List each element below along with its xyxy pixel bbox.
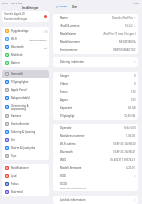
staticText: 8946 0000 0000 0000 000 <box>60 187 87 190</box>
staticText: Apple Pencil <box>11 88 27 92</box>
staticText: 100% <box>133 1 140 4</box>
button[interactable]: Tillgängligt <box>53 112 138 120</box>
staticText: Generellt <box>11 72 23 76</box>
staticText: Bluetooth <box>11 45 24 49</box>
staticText: Allmänt <box>59 5 68 8</box>
button[interactable]: Videor <box>53 80 138 88</box>
staticText: Orientering & anpassning <box>11 104 29 111</box>
button[interactable]: Ljud <box>2 172 49 180</box>
staticText: Flygplansläge <box>11 29 29 33</box>
button[interactable]: ICCID <box>53 180 138 191</box>
button[interactable]: Fokus <box>2 180 49 188</box>
staticText: Ljud <box>11 174 17 178</box>
staticText: 32,65 GB <box>124 114 136 118</box>
button[interactable]: Bakgrundsbild <box>2 94 49 102</box>
button[interactable]: Kamera <box>2 112 49 120</box>
button[interactable]: Bluetooth <box>2 43 49 51</box>
button[interactable]: Mobilnät <box>2 51 49 59</box>
staticText: MHQR3KN/A <box>119 40 136 44</box>
button[interactable]: Wi-Fi <box>2 35 49 43</box>
staticText: Telia 50.0 <box>124 126 136 130</box>
staticText: 0 <box>134 82 136 86</box>
button[interactable]: SEID <box>53 172 138 180</box>
button[interactable]: Foton <box>53 88 138 96</box>
staticText: 4.20.01 <box>126 166 136 170</box>
button[interactable]: Daniels Apple-ID <box>2 11 49 22</box>
button[interactable]: Kapacitet <box>53 104 138 112</box>
button[interactable]: Skärmtid <box>2 188 49 196</box>
staticText: iPad Pro 11 tum (3:e gen.) <box>103 32 136 36</box>
button[interactable]: Bluetooth <box>53 148 138 156</box>
staticText: Mobilnät <box>11 53 23 57</box>
button[interactable]: Skärm & ljusstyrka <box>2 144 49 152</box>
staticText: Inställningar <box>9 6 51 10</box>
staticText: iPadOS-version <box>60 24 80 28</box>
button[interactable]: Orientering & anpassning <box>2 102 49 112</box>
button[interactable]: Apple Pencil <box>2 86 49 94</box>
button[interactable]: Batteri <box>2 59 49 67</box>
button[interactable]: Modellnamn <box>53 30 138 38</box>
staticText: Skärmtid <box>11 190 23 194</box>
button[interactable]: Modulens nummer <box>53 132 138 140</box>
button[interactable]: Allmänt <box>55 5 69 8</box>
staticText: Operatör <box>60 126 72 130</box>
button[interactable]: Sökning & lyssning <box>2 128 49 136</box>
staticText: Batteri <box>11 61 20 65</box>
button[interactable]: Juridisk information <box>53 196 138 204</box>
staticText: Siri <box>11 138 16 142</box>
staticText: Serienummer <box>60 48 78 52</box>
button[interactable]: Notifikationer <box>2 164 49 172</box>
staticText: Videor <box>60 82 69 86</box>
staticText: Om <box>72 5 77 9</box>
staticText: 74:8F:3C:1A:9B:20 <box>113 142 136 146</box>
button[interactable]: Sånger <box>53 72 138 80</box>
staticText: Foton <box>60 90 68 94</box>
button[interactable]: Modell-firmware <box>53 164 138 172</box>
staticText: Appar <box>60 98 68 102</box>
button[interactable]: Namn <box>53 14 138 22</box>
button[interactable]: Wi-Fi-adress <box>53 140 138 148</box>
staticText: Namn <box>60 16 68 20</box>
staticText: Tillgänglighet <box>11 80 29 84</box>
staticText: Modell-firmware <box>60 166 82 170</box>
staticText: Hemmanätverk <box>29 38 47 41</box>
button[interactable]: Flygplansläge <box>2 27 49 35</box>
staticText: Wi-Fi-adress <box>60 142 76 146</box>
button[interactable]: Appar <box>53 96 138 104</box>
staticText: Delning i närheten <box>60 60 84 64</box>
staticText: Fokus <box>11 182 19 186</box>
staticText: Wi-Fi <box>11 37 18 41</box>
staticText: 09:41 <box>2 1 9 4</box>
staticText: Modulens nummer <box>60 134 85 138</box>
button[interactable]: Delning i närheten <box>53 57 138 67</box>
staticText: Kontrollcenter <box>11 122 30 126</box>
staticText: DMPG1MA8Q1GC <box>113 48 136 52</box>
button[interactable]: Tips <box>2 152 49 160</box>
staticText: Kamera <box>11 114 21 118</box>
staticText: Tillgängligt <box>60 114 75 118</box>
staticText: Tips <box>11 154 17 158</box>
staticText: Bakgrundsbild <box>11 96 30 100</box>
staticText: Daniels iPad Pro <box>112 16 133 20</box>
staticText: 74:8F:3C:1A:9B:21 <box>113 150 136 154</box>
staticText: Bluetooth <box>60 150 73 154</box>
staticText: 103 <box>131 98 136 102</box>
button[interactable]: Operatör <box>53 124 138 132</box>
button[interactable]: Kontrollcenter <box>2 120 49 128</box>
staticText: Sånger <box>60 74 70 78</box>
button[interactable]: Generellt <box>2 70 49 78</box>
staticText: Modellnamn <box>60 32 77 36</box>
button[interactable]: iPadOS-version <box>53 22 138 30</box>
staticText: IMEI <box>60 158 66 162</box>
staticText: Juridisk information <box>60 198 86 202</box>
staticText: SEID <box>60 174 66 178</box>
button[interactable]: Serienummer <box>53 46 138 54</box>
button[interactable]: IMEI <box>53 156 138 164</box>
button[interactable]: Modellnummer <box>53 38 138 46</box>
staticText: 133 <box>131 90 136 94</box>
staticText: På <box>44 46 47 49</box>
staticText: ICCID <box>60 182 68 186</box>
staticText: Notifikationer <box>11 166 29 170</box>
button[interactable]: Tillgänglighet <box>2 78 49 86</box>
button[interactable]: Siri <box>2 136 49 144</box>
